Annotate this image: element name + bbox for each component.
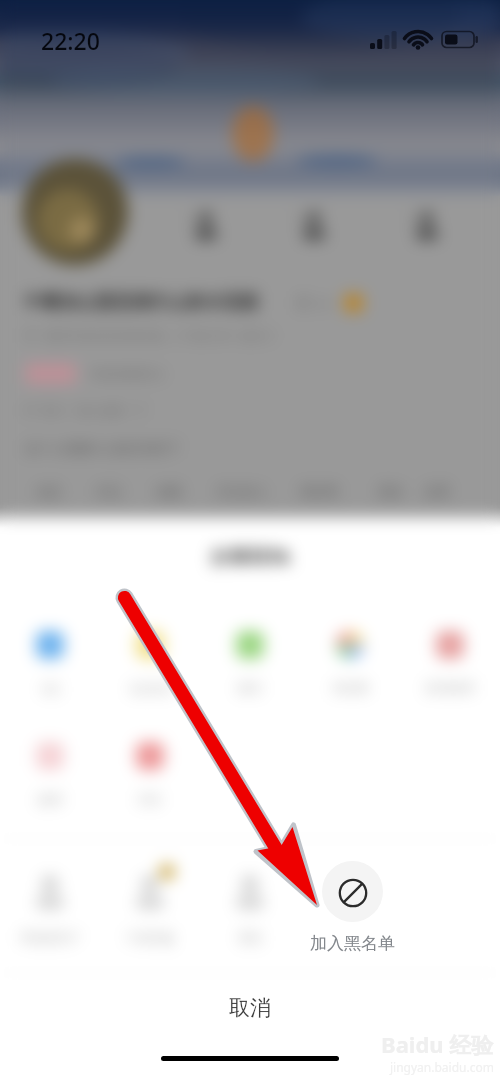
staticText: 加入黑名单: [302, 933, 403, 954]
staticText: QQ空间: [129, 680, 172, 696]
staticText: 12: [294, 210, 308, 226]
staticText: 分享到TA: [210, 544, 290, 570]
staticText: 12: [186, 210, 200, 226]
button[interactable]: 加入黑名单: [302, 861, 403, 954]
staticText: Baidu 经验: [381, 1029, 494, 1059]
staticText: 中餐加山莲花湖方山泉水花园: [24, 291, 258, 314]
staticText: 22:20: [41, 25, 100, 56]
staticText: 取消: [229, 995, 271, 1021]
staticText: jingyan.baidu.com: [390, 1059, 494, 1075]
staticText: 12: [407, 210, 421, 226]
button[interactable]: 取消: [0, 974, 500, 1042]
